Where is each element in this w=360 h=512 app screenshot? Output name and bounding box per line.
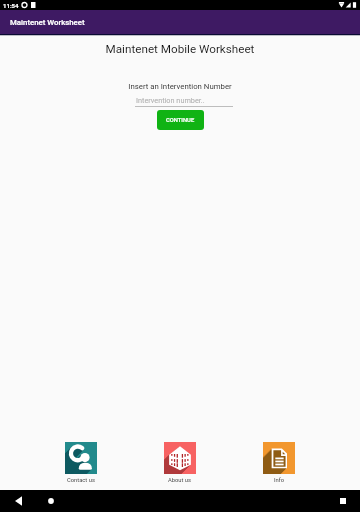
button[interactable]: CONTINUE — [157, 110, 204, 130]
button[interactable]: Info — [263, 442, 295, 484]
staticText: Contact us — [67, 477, 95, 484]
button[interactable]: About us — [164, 442, 196, 484]
staticText: 11:54 — [3, 2, 19, 9]
staticText: Insert an Intervention Number — [0, 82, 360, 91]
button[interactable]: Home — [37, 490, 65, 512]
staticText: Intervention number.. — [136, 96, 205, 105]
staticText: Maintenet Mobile Worksheet — [0, 42, 360, 56]
button[interactable]: Contact us — [65, 442, 97, 484]
button[interactable]: Intervention number.. — [135, 96, 233, 107]
staticText: Maintenet Worksheet — [10, 18, 85, 27]
staticText: Info — [274, 477, 285, 484]
staticText: CONTINUE — [166, 117, 195, 124]
staticText: About us — [168, 477, 192, 484]
button[interactable]: Back — [4, 490, 32, 512]
button[interactable]: Recent apps — [329, 490, 357, 512]
